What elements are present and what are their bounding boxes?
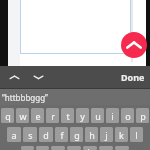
- button[interactable]: w: [16, 108, 29, 123]
- button[interactable]: f: [55, 127, 68, 142]
- staticText: g: [74, 129, 80, 141]
- staticText: q: [5, 110, 11, 122]
- button[interactable]: Next field: [28, 67, 48, 87]
- button[interactable]: Previous field: [4, 67, 24, 87]
- staticText: y: [80, 110, 85, 122]
- button[interactable]: t: [61, 108, 74, 123]
- button[interactable]: n: [99, 146, 113, 150]
- button[interactable]: y: [76, 108, 89, 123]
- staticText: t: [66, 110, 70, 122]
- button[interactable]: g: [70, 127, 83, 142]
- staticText: a: [11, 129, 17, 141]
- staticText: “httbbbggg”: [2, 92, 48, 103]
- staticText: e: [35, 110, 41, 122]
- button[interactable]: q: [1, 108, 14, 123]
- button[interactable]: o: [121, 108, 134, 123]
- button[interactable]: i: [106, 108, 119, 123]
- staticText: l: [135, 129, 138, 141]
- staticText: f: [60, 129, 64, 141]
- button[interactable]: Done: [121, 71, 145, 83]
- button[interactable]: b: [83, 146, 97, 150]
- button[interactable]: c: [51, 146, 65, 150]
- button[interactable]: l: [130, 127, 143, 142]
- button[interactable]: s: [23, 127, 37, 142]
- staticText: Done: [121, 71, 145, 83]
- staticText: o: [125, 110, 131, 122]
- button[interactable]: v: [67, 146, 81, 150]
- button[interactable]: e: [31, 108, 44, 123]
- staticText: w: [19, 110, 27, 122]
- staticText: h: [89, 129, 95, 141]
- button[interactable]: j: [100, 127, 113, 142]
- staticText: u: [95, 110, 101, 122]
- staticText: p: [140, 110, 146, 122]
- button[interactable]: p: [136, 108, 149, 123]
- staticText: b: [87, 146, 93, 150]
- staticText: s: [28, 129, 33, 141]
- button[interactable]: d: [39, 127, 53, 142]
- staticText: i: [111, 110, 114, 122]
- button[interactable]: u: [91, 108, 104, 123]
- button[interactable]: r: [46, 108, 59, 123]
- staticText: r: [51, 110, 55, 122]
- button[interactable]: x: [36, 146, 49, 150]
- button[interactable]: h: [85, 127, 98, 142]
- staticText: k: [119, 129, 124, 141]
- button[interactable]: “httbbbggg”: [0, 89, 150, 105]
- button[interactable]: z: [21, 146, 34, 150]
- staticText: j: [105, 129, 108, 141]
- staticText: d: [43, 129, 49, 141]
- button[interactable]: m: [115, 146, 129, 150]
- button[interactable]: a: [7, 127, 21, 142]
- button[interactable]: k: [115, 127, 128, 142]
- button[interactable]: Scroll to top: [121, 32, 147, 58]
